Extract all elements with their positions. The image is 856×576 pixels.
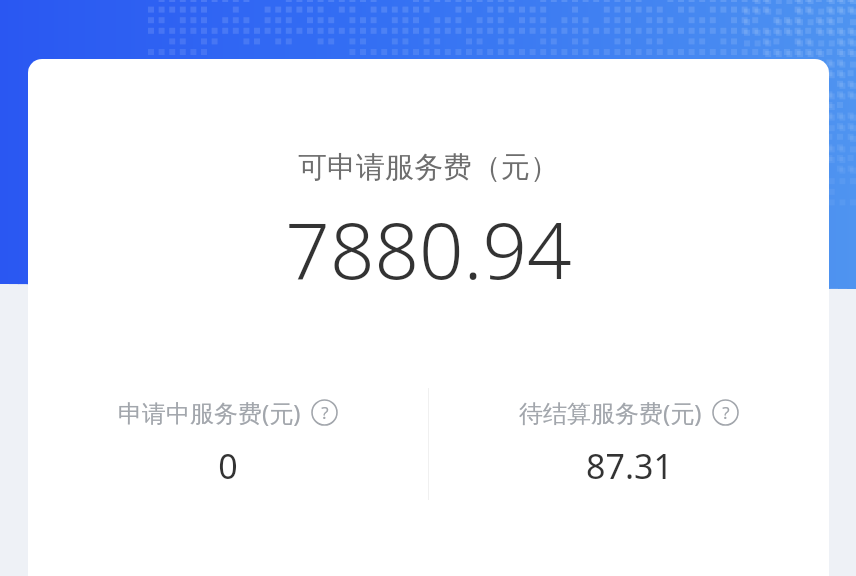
staticText: 待结算服务费(元) xyxy=(519,396,702,429)
staticText: 7880.94 xyxy=(285,196,572,302)
staticText: ? xyxy=(321,401,329,424)
button[interactable]: 帮助说明 xyxy=(712,399,739,426)
button[interactable]: 申请中服务费(元) xyxy=(28,388,428,500)
button[interactable]: 待结算服务费(元) xyxy=(429,388,829,500)
staticText: 申请中服务费(元) xyxy=(118,396,301,429)
button[interactable]: 帮助说明 xyxy=(311,399,338,426)
staticText: 可申请服务费（元） xyxy=(298,149,559,186)
staticText: 87.31 xyxy=(586,443,673,489)
staticText: 0 xyxy=(218,443,238,489)
staticText: ? xyxy=(722,401,730,424)
